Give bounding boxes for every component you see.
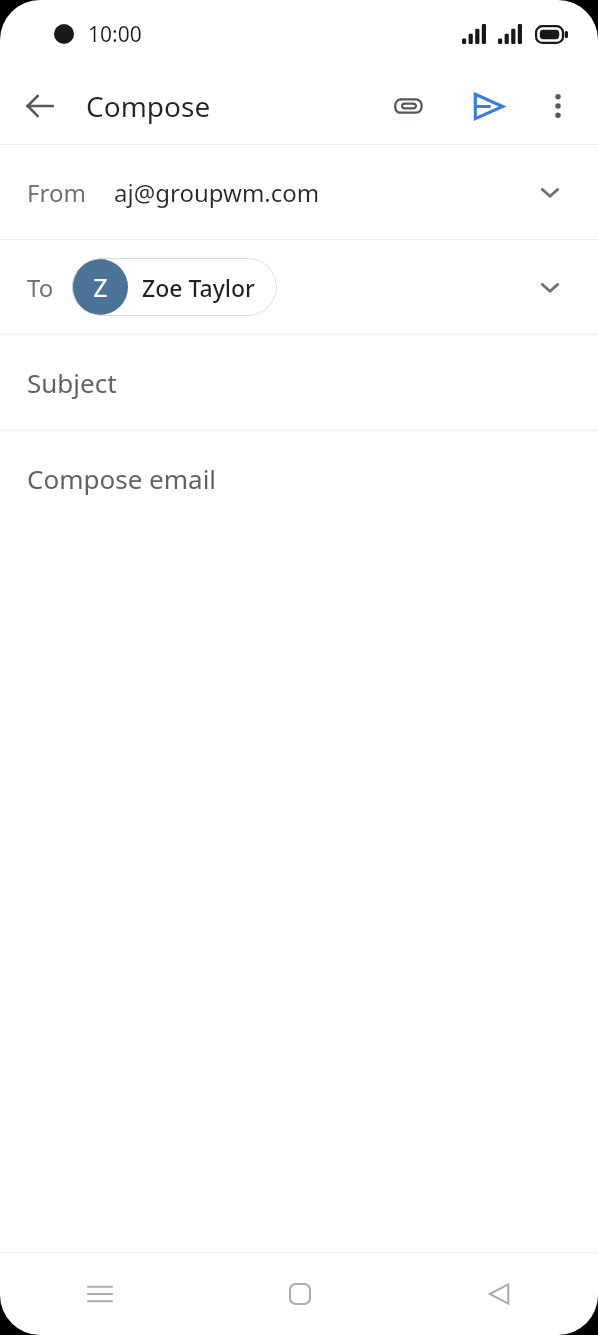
staticText: Compose email [27,461,217,496]
staticText: aj@groupwm.com [114,176,320,209]
staticText: 10:00 [88,20,142,49]
button[interactable]: Recent apps [0,1253,200,1335]
staticText: From [27,176,86,209]
button[interactable]: Subject [0,335,598,430]
staticText: To [27,271,54,304]
button[interactable]: More options [530,78,586,134]
button[interactable]: Home [200,1253,399,1335]
button[interactable]: Z [72,258,277,316]
staticText: Compose [86,87,211,125]
staticText: Zoe Taylor [142,272,255,303]
button[interactable]: Compose email [0,431,598,1252]
button[interactable]: Send [460,78,516,134]
button[interactable]: Back [399,1253,598,1335]
button[interactable]: From [0,145,598,239]
button[interactable]: To [0,240,598,334]
button[interactable]: Back [12,78,68,134]
staticText: Z [93,270,108,304]
staticText: Subject [27,365,117,400]
button[interactable]: Attach file [382,78,438,134]
